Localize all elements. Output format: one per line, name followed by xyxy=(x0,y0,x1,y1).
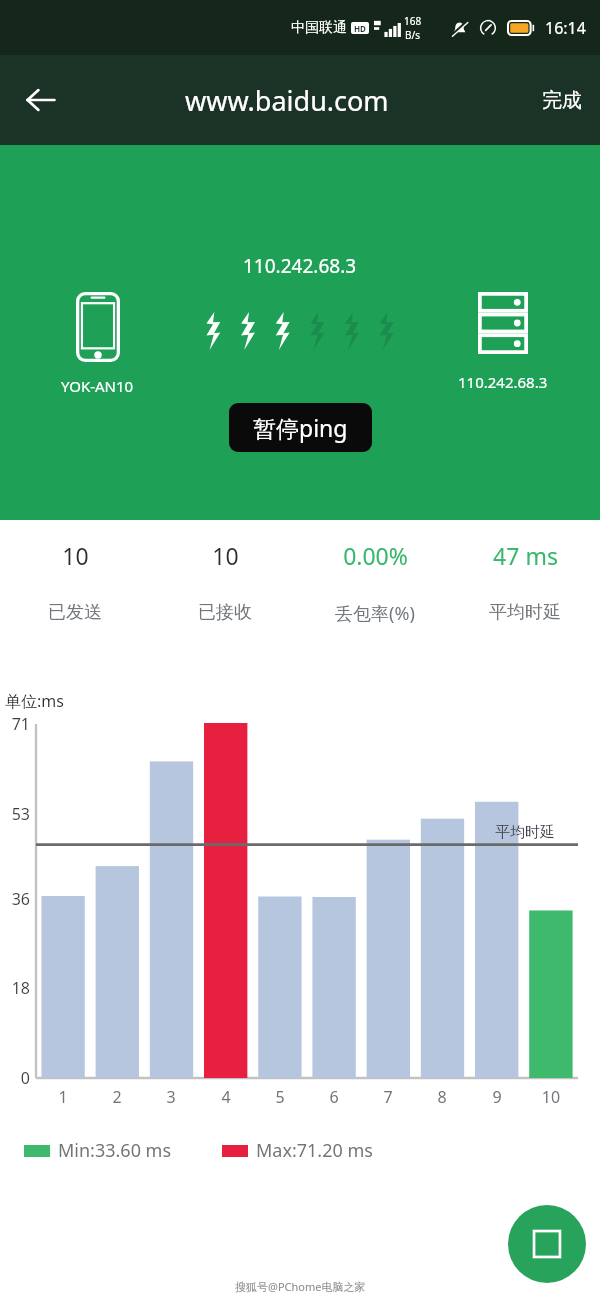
staticText: B/s xyxy=(405,28,421,42)
staticText: YOK-AN10 xyxy=(61,376,134,396)
staticText: 平均时延 xyxy=(489,601,561,624)
staticText: Min:33.60 ms xyxy=(58,1138,172,1163)
staticText: 0 xyxy=(0,1067,30,1089)
staticText: 完成 xyxy=(542,88,582,113)
button[interactable]: 暂停ping xyxy=(229,403,372,452)
staticText: 8 xyxy=(415,1086,469,1108)
staticText: 110.242.68.3 xyxy=(243,253,357,279)
staticText: 3 xyxy=(144,1086,198,1108)
other: Data usage xyxy=(479,19,497,37)
other: Silent mode xyxy=(450,19,469,38)
button[interactable]: Screenshot xyxy=(508,1205,586,1283)
staticText: 168 xyxy=(404,14,422,28)
staticText: 10 xyxy=(62,540,89,571)
button[interactable]: 0.00% xyxy=(300,540,450,626)
staticText: 丢包率(%) xyxy=(335,601,415,626)
button[interactable]: Back xyxy=(12,71,70,129)
button[interactable]: 10 xyxy=(150,540,300,624)
staticText: 4 xyxy=(199,1086,253,1108)
staticText: 1 xyxy=(36,1086,90,1108)
staticText: 16:14 xyxy=(545,17,586,39)
staticText: 中国联通 xyxy=(291,19,347,37)
staticText: 36 xyxy=(0,888,30,910)
staticText: 7 xyxy=(361,1086,415,1108)
staticText: 10 xyxy=(524,1086,578,1108)
staticText: 10 xyxy=(212,540,239,571)
staticText: 71 xyxy=(0,713,30,735)
staticText: 53 xyxy=(0,803,30,825)
staticText: 0.00% xyxy=(343,540,408,571)
staticText: 暂停ping xyxy=(253,412,348,443)
staticText: Max:71.20 ms xyxy=(256,1138,373,1163)
button[interactable]: 10 xyxy=(0,540,150,624)
staticText: 搜狐号@PChome电脑之家 xyxy=(235,1279,366,1294)
staticText: 47 ms xyxy=(493,540,558,571)
staticText: 9 xyxy=(470,1086,524,1108)
button[interactable]: 47 ms xyxy=(450,540,600,624)
staticText: 18 xyxy=(0,977,30,999)
staticText: 5 xyxy=(253,1086,307,1108)
staticText: 已接收 xyxy=(198,601,252,624)
staticText: www.baidu.com xyxy=(185,82,389,119)
staticText: 平均时延 xyxy=(495,823,555,842)
staticText: 2 xyxy=(90,1086,144,1108)
staticText: HD xyxy=(354,23,366,34)
staticText: 单位:ms xyxy=(5,690,64,712)
staticText: 110.242.68.3 xyxy=(458,372,548,392)
button[interactable]: 完成 xyxy=(524,72,600,129)
staticText: 6 xyxy=(307,1086,361,1108)
staticText: 已发送 xyxy=(48,601,102,624)
